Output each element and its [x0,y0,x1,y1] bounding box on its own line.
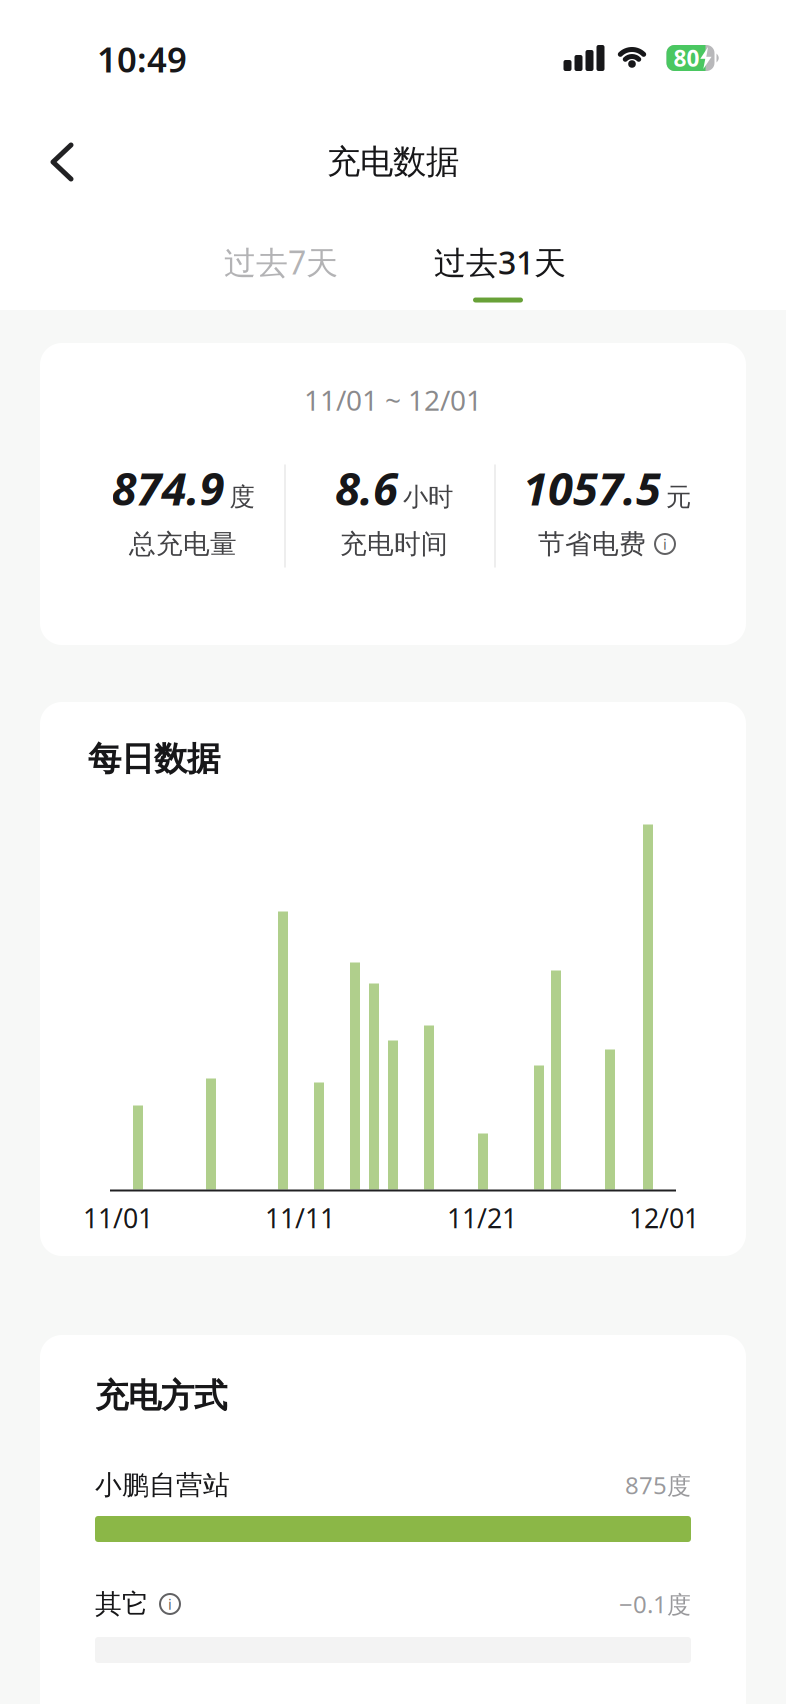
staticText: 过去7天 [224,241,338,283]
staticText: 11/01 ~ 12/01 [304,381,482,419]
staticText: 小时 [403,482,453,513]
staticText: 80 [673,43,699,73]
staticText: 充电方式 [95,1375,227,1416]
staticText: 过去31天 [434,241,566,283]
staticText: 每日数据 [88,738,220,779]
staticText: 874.9 [111,458,224,518]
staticText: 875度 [625,1469,691,1501]
staticText: 10:49 [97,36,187,82]
staticText: 总充电量 [129,528,237,560]
staticText: 元 [666,482,691,513]
staticText: 11/01 [83,1200,153,1236]
staticText: i [663,534,667,554]
staticText: −0.1度 [619,1588,691,1620]
staticText: 11/11 [265,1200,335,1236]
staticText: 其它 [95,1588,149,1620]
staticText: 8.6 [335,458,398,518]
staticText: 充电数据 [327,141,459,182]
staticText: 节省电费 [538,528,646,560]
staticText: 11/21 [447,1200,517,1236]
staticText: 度 [229,482,254,513]
staticText: i [168,1594,172,1614]
staticText: 充电时间 [340,528,448,560]
staticText: 1057.5 [523,458,661,518]
staticText: 12/01 [629,1200,699,1236]
staticText: 小鹏自营站 [95,1469,230,1501]
